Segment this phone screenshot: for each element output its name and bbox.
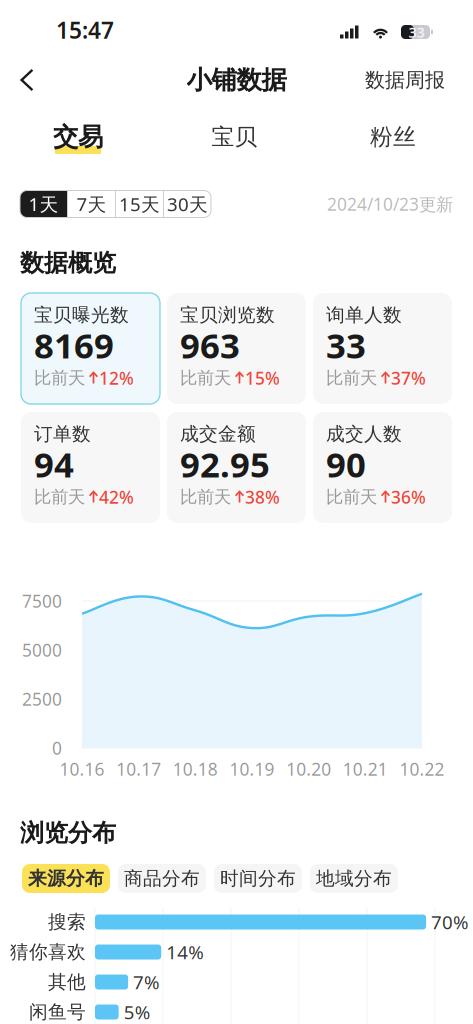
- staticText: 7%: [133, 970, 160, 994]
- staticText: 92.95: [180, 441, 270, 487]
- button[interactable]: 数据周报: [361, 58, 449, 102]
- staticText: 浏览分布: [20, 818, 116, 848]
- button[interactable]: 成交金额: [167, 412, 306, 523]
- staticText: 猜你喜欢: [10, 940, 86, 963]
- button[interactable]: 1天: [20, 190, 67, 217]
- button[interactable]: 宝贝曝光数: [21, 293, 160, 404]
- staticText: 数据概览: [20, 248, 116, 278]
- staticText: 小铺数据: [186, 64, 286, 95]
- staticText: 成交金额: [180, 422, 256, 445]
- staticText: 询单人数: [326, 303, 402, 326]
- button[interactable]: 成交人数: [313, 412, 452, 523]
- staticText: 数据周报: [365, 68, 445, 92]
- staticText: 7天: [76, 192, 106, 216]
- staticText: 10.22: [399, 757, 444, 780]
- staticText: 38%: [245, 485, 280, 508]
- staticText: 比前天: [34, 367, 85, 389]
- staticText: 闲鱼号: [29, 1000, 86, 1023]
- staticText: 90: [326, 441, 366, 487]
- button[interactable]: 时间分布: [214, 864, 302, 893]
- staticText: 10.18: [173, 757, 218, 780]
- button[interactable]: 订单数: [21, 412, 160, 523]
- staticText: 粉丝: [370, 123, 416, 151]
- staticText: 10.21: [343, 757, 388, 780]
- staticText: 宝贝: [211, 123, 257, 151]
- staticText: 10.17: [116, 757, 161, 780]
- staticText: 37%: [391, 366, 426, 389]
- staticText: 其他: [48, 970, 86, 993]
- staticText: 比前天: [326, 486, 377, 508]
- staticText: 时间分布: [220, 867, 296, 890]
- staticText: 42%: [99, 485, 134, 508]
- button[interactable]: 商品分布: [118, 864, 206, 893]
- staticText: 比前天: [34, 486, 85, 508]
- staticText: 8169: [34, 322, 114, 368]
- staticText: 2024/10/23更新: [327, 192, 453, 215]
- staticText: 14%: [166, 940, 204, 964]
- staticText: 成交人数: [326, 422, 402, 445]
- staticText: 12%: [99, 366, 134, 389]
- staticText: 10.20: [286, 757, 331, 780]
- staticText: 70%: [431, 910, 469, 934]
- staticText: 5%: [124, 1000, 151, 1024]
- button[interactable]: 粉丝: [348, 114, 438, 160]
- staticText: 比前天: [180, 367, 231, 389]
- staticText: 比前天: [180, 486, 231, 508]
- button[interactable]: 询单人数: [313, 293, 452, 404]
- staticText: 7500: [22, 589, 62, 612]
- staticText: 比前天: [326, 367, 377, 389]
- staticText: 地域分布: [316, 867, 392, 890]
- button[interactable]: 30天: [164, 190, 211, 217]
- staticText: 5000: [22, 638, 62, 661]
- button[interactable]: 15天: [116, 190, 163, 217]
- button[interactable]: 宝贝浏览数: [167, 293, 306, 404]
- staticText: 15%: [245, 366, 280, 389]
- staticText: 963: [180, 322, 240, 368]
- button[interactable]: 来源分布: [22, 864, 110, 893]
- button[interactable]: Back: [5, 58, 49, 102]
- staticText: 订单数: [34, 422, 91, 445]
- button[interactable]: 7天: [68, 190, 115, 217]
- staticText: 10.16: [59, 757, 104, 780]
- staticText: 33: [326, 322, 366, 368]
- staticText: 来源分布: [28, 867, 104, 890]
- staticText: 30天: [167, 192, 208, 216]
- staticText: 宝贝浏览数: [180, 303, 275, 326]
- staticText: 商品分布: [124, 867, 200, 890]
- staticText: 交易: [53, 121, 103, 152]
- staticText: 36%: [391, 485, 426, 508]
- staticText: 15:47: [56, 15, 114, 45]
- staticText: 94: [34, 441, 74, 487]
- button[interactable]: 宝贝: [189, 114, 279, 160]
- staticText: 0: [52, 736, 62, 759]
- button[interactable]: 地域分布: [310, 864, 398, 893]
- staticText: 搜索: [48, 910, 86, 933]
- staticText: 宝贝曝光数: [34, 303, 129, 326]
- staticText: 33: [408, 22, 424, 42]
- staticText: 1天: [28, 192, 58, 216]
- staticText: 2500: [22, 687, 62, 710]
- staticText: 15天: [119, 192, 160, 216]
- staticText: 10.19: [229, 757, 274, 780]
- button[interactable]: 交易: [33, 114, 123, 160]
